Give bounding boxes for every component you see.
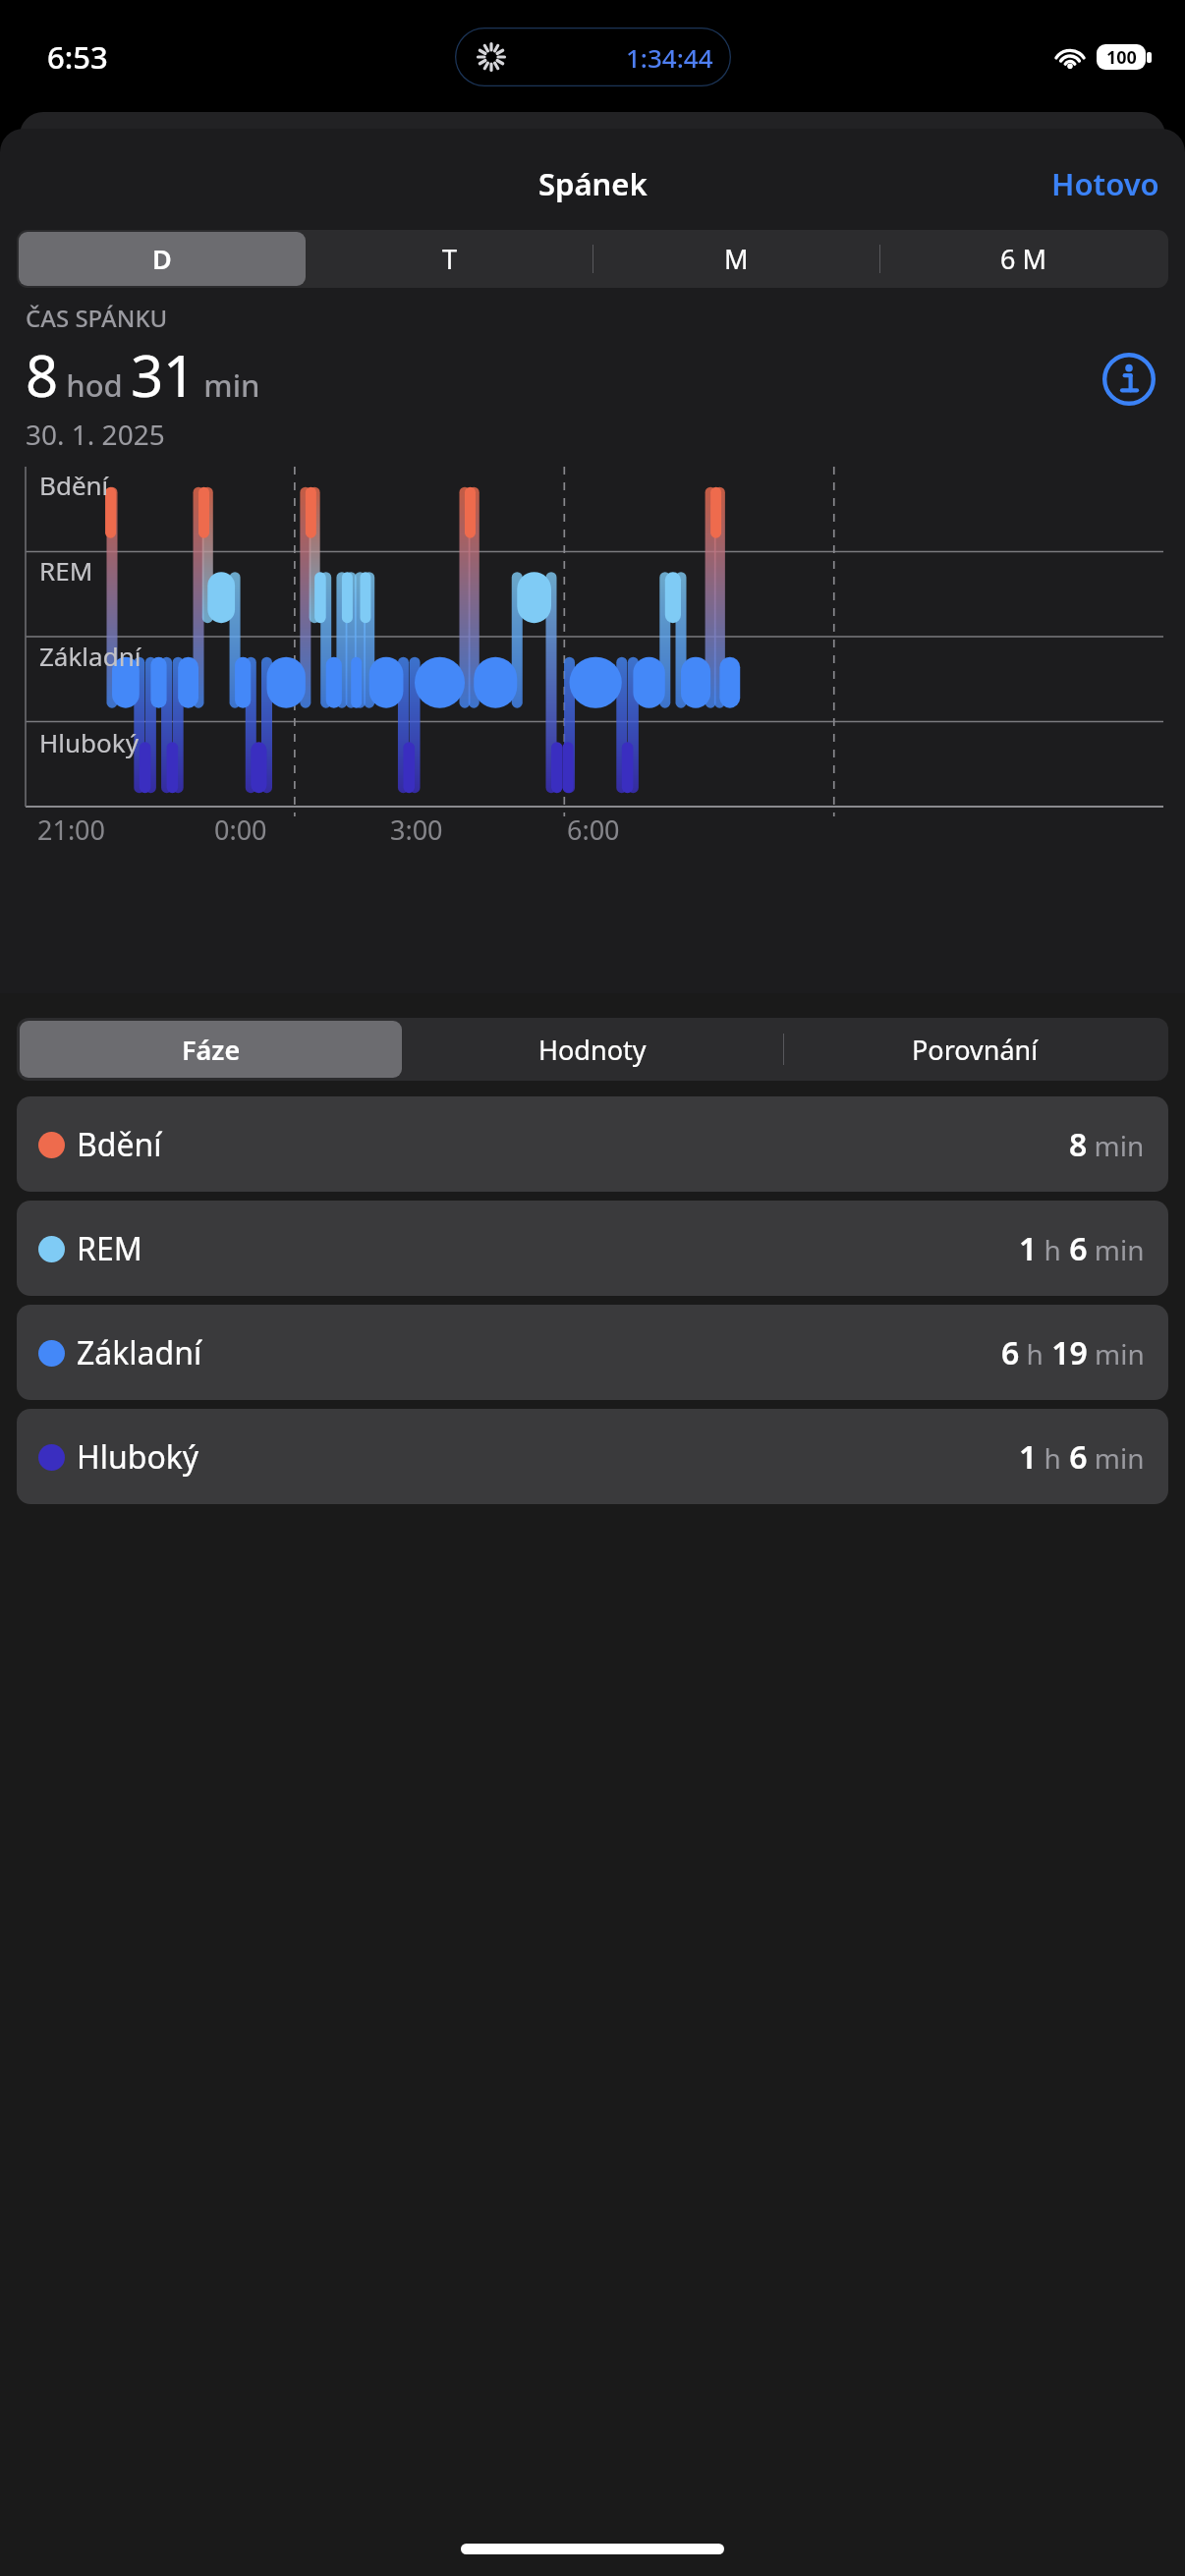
button[interactable]: REM bbox=[17, 1201, 1168, 1296]
staticText: M bbox=[724, 241, 749, 277]
button[interactable]: Bdění bbox=[17, 1096, 1168, 1192]
button[interactable]: Hluboký bbox=[17, 1409, 1168, 1504]
staticText: 3:00 bbox=[390, 812, 443, 848]
staticText: D bbox=[152, 241, 172, 277]
staticText: 6 M bbox=[1000, 241, 1046, 277]
staticText: 6:00 bbox=[567, 812, 620, 848]
button[interactable]: Hotovo bbox=[1026, 151, 1185, 216]
staticText: 21:00 bbox=[37, 812, 106, 848]
staticText: 30. 1. 2025 bbox=[26, 416, 165, 453]
button[interactable]: M bbox=[593, 232, 879, 286]
staticText: REM bbox=[39, 553, 93, 588]
staticText: 6:53 bbox=[47, 36, 108, 78]
button[interactable]: Základní bbox=[17, 1305, 1168, 1400]
staticText: Porovnání bbox=[912, 1032, 1039, 1068]
button[interactable]: D bbox=[19, 232, 306, 286]
staticText: T bbox=[442, 241, 458, 277]
button[interactable]: Hodnoty bbox=[402, 1021, 783, 1078]
staticText: 0:00 bbox=[214, 812, 267, 848]
staticText: Bdění bbox=[39, 468, 109, 502]
staticText: Spánek bbox=[538, 163, 648, 204]
staticText: Hodnoty bbox=[538, 1032, 647, 1068]
staticText: Bdění bbox=[77, 1123, 162, 1166]
staticText: Fáze bbox=[182, 1032, 241, 1068]
staticText: ČAS SPÁNKU bbox=[26, 302, 168, 334]
staticText: 1 h 6 min bbox=[1019, 1227, 1145, 1270]
staticText: 6 h 19 min bbox=[1001, 1331, 1145, 1374]
button[interactable]: Informace bbox=[1099, 349, 1159, 410]
staticText: Základní bbox=[39, 639, 141, 673]
staticText: Hotovo bbox=[1051, 163, 1159, 204]
button[interactable]: 6 M bbox=[880, 232, 1166, 286]
staticText: 100 bbox=[1106, 45, 1137, 70]
staticText: REM bbox=[77, 1227, 142, 1270]
staticText: Hluboký bbox=[39, 725, 139, 759]
button[interactable]: Porovnání bbox=[784, 1021, 1165, 1078]
staticText: 8 min bbox=[1069, 1123, 1145, 1166]
staticText: 1:34:44 bbox=[626, 40, 713, 75]
staticText: 8 hod 31 min bbox=[26, 336, 260, 414]
staticText: Základní bbox=[77, 1331, 202, 1374]
staticText: 1 h 6 min bbox=[1019, 1435, 1145, 1479]
button[interactable]: Fáze bbox=[20, 1021, 402, 1078]
staticText: Hluboký bbox=[77, 1435, 199, 1479]
button[interactable]: T bbox=[307, 232, 592, 286]
